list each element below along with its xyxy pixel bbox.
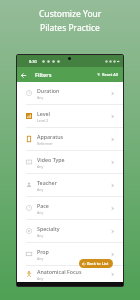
staticText: Reset All [102,72,118,77]
button[interactable]: Apparatus [17,128,123,150]
staticText: Teacher [37,179,57,186]
button[interactable]: Specialty [17,220,123,242]
staticText: Apparatus [37,133,64,140]
button[interactable]: Back [19,71,27,79]
staticText: Prop [37,248,49,255]
staticText: Any [37,256,44,261]
staticText: 8:30 [29,59,37,64]
staticText: Any [37,210,44,215]
button[interactable]: Teacher [17,174,123,196]
button[interactable]: Level [17,105,123,127]
button[interactable]: Video Type [17,151,123,173]
staticText: Filters [35,71,52,79]
staticText: Video Type [37,156,65,163]
staticText: Pace [37,202,49,209]
button[interactable]: Reset All [97,72,123,77]
button[interactable]: Prop [17,243,123,265]
button[interactable]: Back to List [79,259,113,268]
staticText: Specialty [37,225,60,232]
button[interactable]: Pace [17,197,123,219]
button[interactable]: Anatomical Focus [17,266,123,282]
staticText: Back to List [87,261,109,266]
staticText: Anatomical Focus [37,268,82,275]
staticText: Any [37,187,44,192]
staticText: Level 2 [37,118,49,123]
button[interactable]: Duration [17,82,123,104]
staticText: Reformer [37,141,53,146]
staticText: Duration [37,87,60,94]
staticText: Any [37,233,44,238]
staticText: Customize Your [39,8,102,20]
staticText: Level [37,110,51,117]
staticText: Pilates Practice [40,22,100,34]
staticText: Any [37,276,44,281]
staticText: Any [37,164,44,169]
staticText: Any [37,95,44,100]
